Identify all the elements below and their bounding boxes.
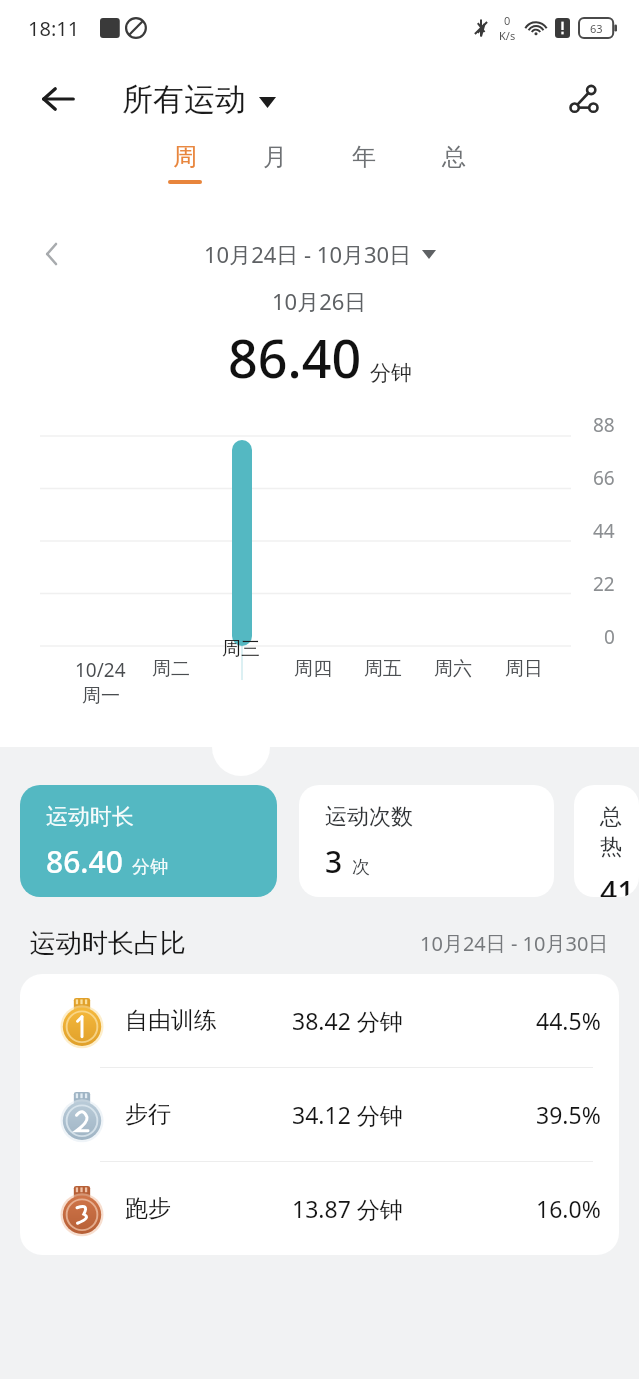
button[interactable]: 步行 [20, 1068, 619, 1161]
staticText: 66 [593, 465, 615, 491]
staticText: 44 [593, 518, 615, 544]
staticText: 跑步 [125, 1194, 171, 1223]
button[interactable]: 自由训练 [20, 974, 619, 1067]
button[interactable]: 所有运动 [122, 80, 276, 119]
staticText: 周三 [222, 637, 260, 661]
staticText: 分钟 [132, 856, 168, 879]
staticText: 13.87 分钟 [292, 1193, 403, 1224]
button[interactable]: 总 [427, 142, 481, 180]
staticText: 周一 [82, 684, 120, 708]
staticText: 41 [600, 871, 635, 897]
staticText: 周日 [505, 657, 543, 681]
staticText: 18:11 [28, 15, 80, 42]
button[interactable]: Previous week [28, 230, 76, 278]
staticText: 16.0% [536, 1193, 601, 1224]
staticText: 所有运动 [122, 80, 246, 119]
button[interactable]: Share [557, 72, 611, 126]
staticText: 86.40 [228, 322, 362, 393]
staticText: 10月24日 - 10月30日 [204, 239, 412, 269]
staticText: 10/24 [75, 657, 126, 683]
button[interactable]: 运动次数 [299, 785, 554, 897]
staticText: 周五 [364, 657, 402, 681]
staticText: 周 [173, 142, 197, 172]
staticText: 86.40 [46, 841, 123, 882]
staticText: 自由训练 [125, 1006, 217, 1035]
button[interactable]: 跑步 [20, 1162, 619, 1255]
staticText: 运动次数 [325, 803, 413, 831]
button[interactable]: 运动时长 [20, 785, 277, 897]
staticText: 22 [593, 571, 615, 597]
staticText: 63 [590, 21, 603, 36]
staticText: 34.12 分钟 [292, 1099, 403, 1130]
staticText: 运动时长 [46, 803, 134, 831]
button[interactable]: 10月24日 - 10月30日 [204, 239, 436, 269]
staticText: 步行 [125, 1100, 171, 1129]
staticText: 3 [325, 841, 343, 882]
staticText: 10月24日 - 10月30日 [420, 930, 609, 957]
staticText: 44.5% [536, 1005, 601, 1036]
button[interactable]: 年 [337, 142, 391, 180]
staticText: 88 [593, 412, 615, 438]
staticText: 0 [504, 13, 511, 28]
staticText: 分钟 [370, 360, 412, 386]
button[interactable]: Back [30, 71, 86, 127]
staticText: 周六 [434, 657, 472, 681]
button[interactable]: 月 [248, 142, 302, 180]
staticText: 38.42 分钟 [292, 1005, 403, 1036]
staticText: 次 [352, 856, 370, 879]
staticText: 10月26日 [272, 286, 367, 316]
staticText: 39.5% [536, 1099, 601, 1130]
staticText: 周四 [294, 657, 332, 681]
button[interactable]: 周 [158, 142, 212, 184]
staticText: 总热 [600, 803, 639, 861]
staticText: 周二 [152, 657, 190, 681]
staticText: 运动时长占比 [30, 927, 186, 960]
button[interactable]: 总热 [574, 785, 639, 897]
staticText: 年 [352, 142, 376, 172]
staticText: 0 [604, 624, 615, 650]
staticText: 总 [442, 142, 466, 172]
staticText: K/s [499, 28, 516, 43]
staticText: 月 [263, 142, 287, 172]
